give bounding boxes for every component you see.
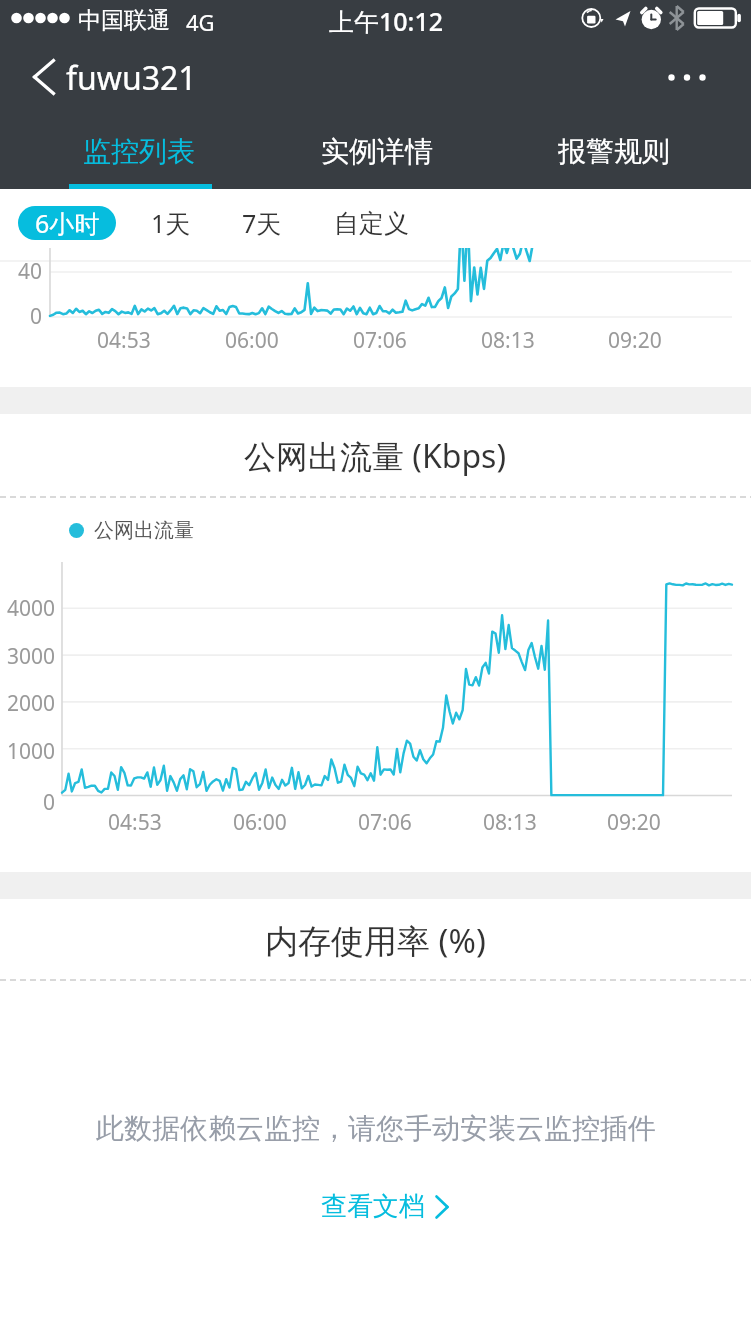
staticText: 自定义 [334, 208, 409, 239]
staticText: 4G [186, 7, 215, 37]
button[interactable]: 实例详情 [258, 114, 495, 189]
staticText: 查看文档 [321, 1190, 425, 1223]
staticText: 1000 [7, 737, 56, 766]
staticText: 06:00 [225, 326, 279, 355]
button[interactable]: 监控列表 [20, 114, 258, 189]
staticText: 7天 [242, 206, 282, 240]
staticText: 09:20 [608, 326, 662, 355]
staticText: 07:06 [353, 326, 407, 355]
staticText: 中国联通 [78, 6, 170, 35]
staticText: 3000 [7, 642, 56, 671]
staticText: fuwu321 [66, 56, 197, 100]
button[interactable]: 查看文档 [311, 1184, 461, 1229]
staticText: 实例详情 [321, 134, 433, 169]
staticText: 04:53 [97, 326, 151, 355]
button[interactable]: More options [651, 47, 723, 105]
button[interactable]: 6小时 [18, 206, 116, 240]
staticText: 04:53 [108, 808, 162, 837]
staticText: 08:13 [481, 326, 535, 355]
staticText: 0 [43, 788, 56, 817]
staticText: 40 [18, 257, 43, 286]
staticText: 内存使用率 (%) [265, 918, 486, 963]
staticText: 4000 [7, 594, 56, 623]
staticText: 07:06 [358, 808, 412, 837]
staticText: 09:20 [607, 808, 661, 837]
button[interactable]: 1天 [138, 206, 204, 240]
staticText: 上午10:12 [329, 4, 444, 38]
staticText: 监控列表 [83, 134, 195, 169]
staticText: 6小时 [35, 206, 100, 240]
staticText: 06:00 [233, 808, 287, 837]
button[interactable]: 报警规则 [495, 114, 732, 189]
staticText: 报警规则 [558, 134, 670, 169]
staticText: 此数据依赖云监控，请您手动安装云监控插件 [96, 1111, 656, 1146]
button[interactable]: 自定义 [321, 206, 422, 240]
button[interactable]: 7天 [229, 206, 295, 240]
staticText: 08:13 [483, 808, 537, 837]
staticText: 2000 [7, 689, 56, 718]
staticText: 公网出流量 [94, 518, 194, 543]
staticText: 0 [30, 302, 43, 331]
staticText: 公网出流量 (Kbps) [244, 434, 507, 478]
staticText: 1天 [151, 206, 191, 240]
button[interactable]: Back [14, 48, 74, 106]
